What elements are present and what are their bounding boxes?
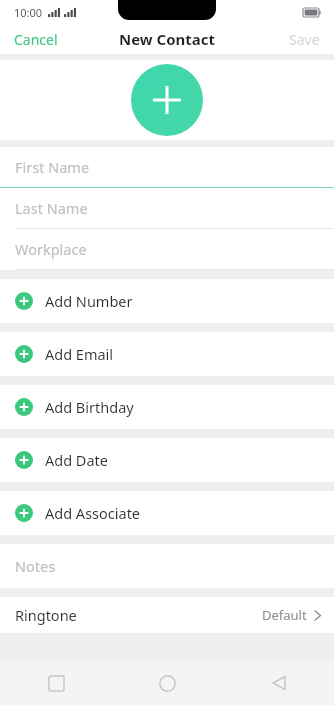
button[interactable]: Ringtone <box>0 597 334 633</box>
staticText: Notes <box>15 556 56 576</box>
button[interactable]: Add photo <box>131 64 203 136</box>
button[interactable]: Home <box>112 661 223 705</box>
staticText: Add Number <box>45 291 133 311</box>
button[interactable]: Recent apps <box>0 661 112 705</box>
staticText: New Contact <box>119 29 216 49</box>
staticText: Add Birthday <box>45 397 134 417</box>
button[interactable]: Save <box>275 25 334 54</box>
button[interactable]: Add Number <box>0 279 334 323</box>
button[interactable]: Add Email <box>0 332 334 376</box>
button[interactable]: Add Associate <box>0 491 334 535</box>
staticText: Add Associate <box>45 503 141 523</box>
staticText: Ringtone <box>15 605 77 625</box>
staticText: Cancel <box>14 30 58 49</box>
button[interactable]: First Name <box>0 147 334 188</box>
staticText: Last Name <box>15 198 88 218</box>
button[interactable]: Notes <box>0 544 334 588</box>
button[interactable]: Back <box>223 661 334 705</box>
button[interactable]: Workplace <box>0 229 334 270</box>
staticText: 10:00 <box>14 5 43 20</box>
button[interactable]: Add Date <box>0 438 334 482</box>
staticText: Add Date <box>45 450 109 470</box>
staticText: Save <box>289 30 320 49</box>
staticText: Workplace <box>15 239 87 259</box>
staticText: Add Email <box>45 344 114 364</box>
staticText: Default <box>262 606 307 624</box>
button[interactable]: Cancel <box>0 25 72 54</box>
button[interactable]: Last Name <box>0 188 334 229</box>
staticText: First Name <box>15 157 90 177</box>
button[interactable]: Add Birthday <box>0 385 334 429</box>
